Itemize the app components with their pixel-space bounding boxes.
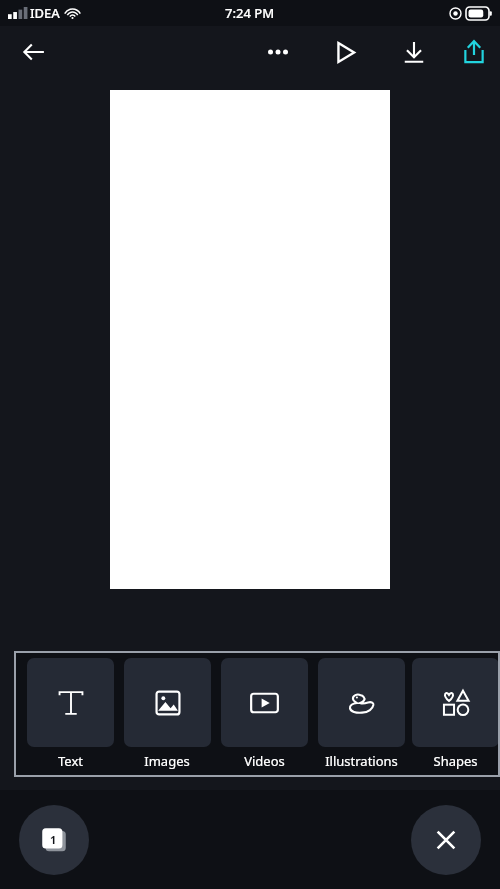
button[interactable]: Play — [324, 30, 368, 74]
button[interactable]: Share — [452, 30, 496, 74]
staticText: IDEA — [30, 4, 60, 22]
button[interactable]: More options — [256, 30, 300, 74]
button[interactable]: Pages — [19, 805, 89, 875]
staticText: Shapes — [433, 752, 478, 770]
button[interactable]: Shapes — [410, 658, 500, 770]
button[interactable]: Back — [12, 30, 56, 74]
button[interactable]: Illustrations — [313, 658, 409, 770]
staticText: 1 — [50, 832, 57, 847]
staticText: Illustrations — [325, 752, 398, 770]
button[interactable]: Images — [119, 658, 215, 770]
button[interactable]: Text — [22, 658, 118, 770]
button[interactable]: Download — [392, 30, 436, 74]
button[interactable]: Close — [411, 805, 481, 875]
staticText: Images — [144, 752, 190, 770]
staticText: Videos — [244, 752, 285, 770]
button[interactable]: Videos — [216, 658, 312, 770]
staticText: Text — [58, 752, 83, 770]
staticText: 7:24 PM — [225, 4, 275, 22]
